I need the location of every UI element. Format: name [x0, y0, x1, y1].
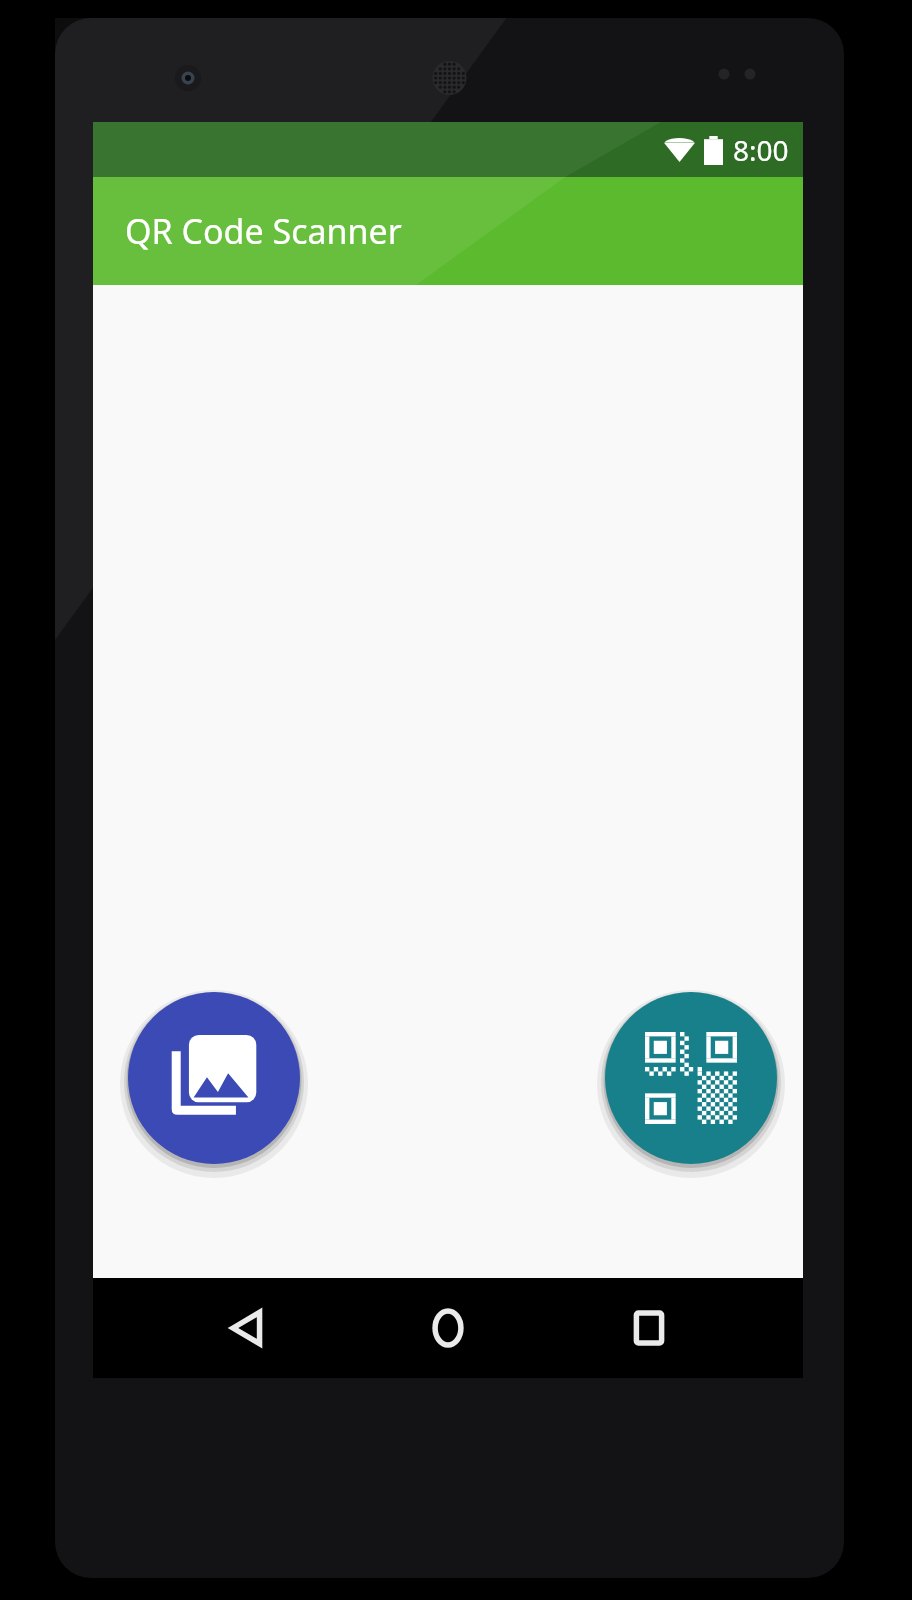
button[interactable]: Pick image from gallery [128, 992, 300, 1164]
button[interactable]: Scan QR code [605, 992, 777, 1164]
staticText: 8:00 [733, 131, 789, 169]
button[interactable]: Back [202, 1282, 294, 1374]
staticText: QR Code Scanner [125, 208, 402, 254]
button[interactable]: Home [402, 1282, 494, 1374]
button[interactable]: Recents [603, 1282, 695, 1374]
